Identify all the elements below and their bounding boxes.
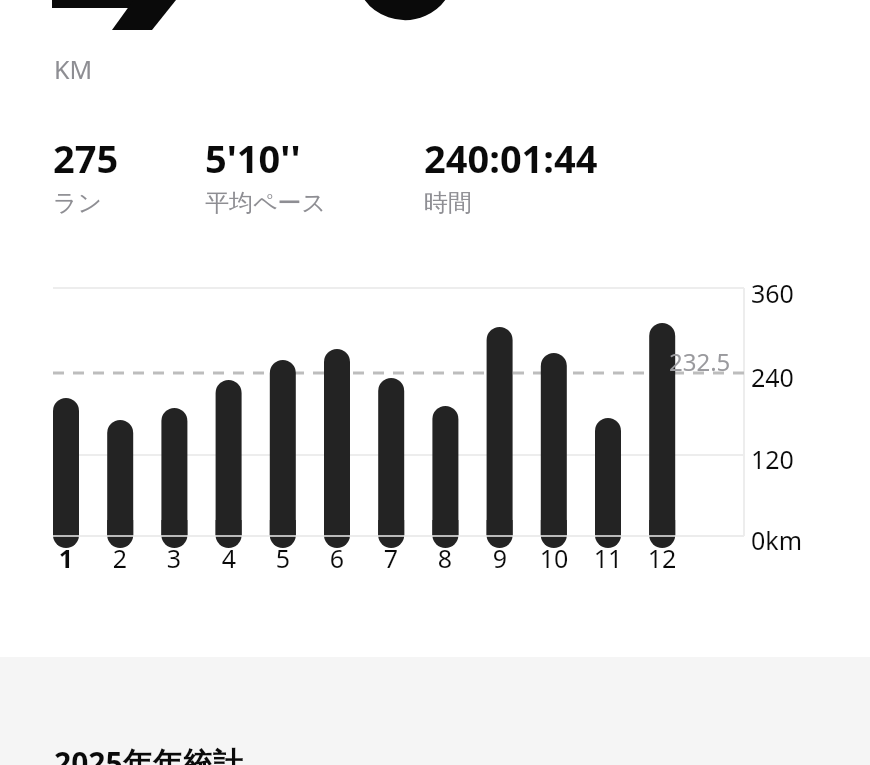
staticText: 平均ペース [205, 188, 327, 218]
staticText: 232.5 [669, 345, 731, 378]
staticText: 8 [421, 541, 469, 575]
staticText: 1 [42, 541, 90, 575]
staticText: 5'10'' [205, 132, 301, 184]
staticText: ラン [53, 188, 103, 218]
staticText: 240 [751, 360, 794, 394]
staticText: 2 [96, 541, 144, 575]
staticText: 0km [751, 523, 803, 557]
staticText: 275 [53, 132, 119, 184]
button[interactable]: 275 [53, 132, 119, 218]
staticText: 11 [584, 541, 632, 575]
staticText: 3 [150, 541, 198, 575]
staticText: 4 [205, 541, 253, 575]
button[interactable] [0, 0, 870, 600]
staticText: 12 [638, 541, 686, 575]
staticText: KM [54, 52, 93, 86]
staticText: 9 [476, 541, 524, 575]
staticText: 5 [259, 541, 307, 575]
staticText: 6 [313, 541, 361, 575]
staticText: 360 [751, 276, 794, 310]
staticText: 2025年年統計 [54, 742, 243, 765]
staticText: 7 [367, 541, 415, 575]
staticText: 240:01:44 [424, 132, 598, 184]
button[interactable]: 5'10'' [205, 132, 327, 218]
staticText: 時間 [424, 188, 472, 218]
staticText: 120 [751, 442, 794, 476]
button[interactable]: 240:01:44 [424, 132, 598, 218]
staticText: 10 [530, 541, 578, 575]
